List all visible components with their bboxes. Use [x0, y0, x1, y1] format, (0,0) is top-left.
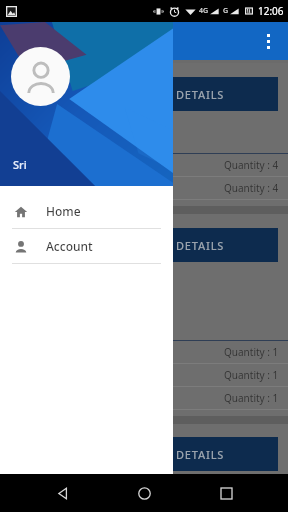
button[interactable]: DETAILS [123, 228, 278, 262]
staticText: Home [51, 30, 100, 53]
staticText: Quantity : 1 [224, 345, 279, 359]
staticText: 4G [199, 6, 209, 16]
button[interactable]: DETAILS [123, 77, 278, 111]
button[interactable]: Account [0, 229, 173, 263]
button[interactable]: Home [124, 474, 164, 512]
button[interactable]: Back [42, 474, 82, 512]
staticText: G [223, 6, 229, 16]
staticText: Quantity : 4 [224, 181, 279, 195]
button[interactable]: Open navigation drawer [8, 26, 38, 56]
button[interactable]: DETAILS [123, 437, 278, 471]
staticText: 12:06 [258, 4, 284, 18]
staticText: DETAILS [176, 447, 225, 462]
staticText: Quantity : 1 [224, 368, 279, 382]
button[interactable]: Profile photo [11, 47, 70, 106]
button[interactable]: Home [0, 194, 173, 228]
button[interactable]: Recent apps [206, 474, 246, 512]
staticText: Sri [13, 157, 27, 172]
staticText: Home [46, 203, 81, 219]
staticText: Quantity : 4 [224, 158, 279, 172]
staticText: DETAILS [176, 238, 225, 253]
button[interactable]: More options [252, 25, 284, 57]
staticText: Account [46, 238, 93, 254]
staticText: DETAILS [176, 87, 225, 102]
staticText: Quantity : 1 [224, 391, 279, 405]
